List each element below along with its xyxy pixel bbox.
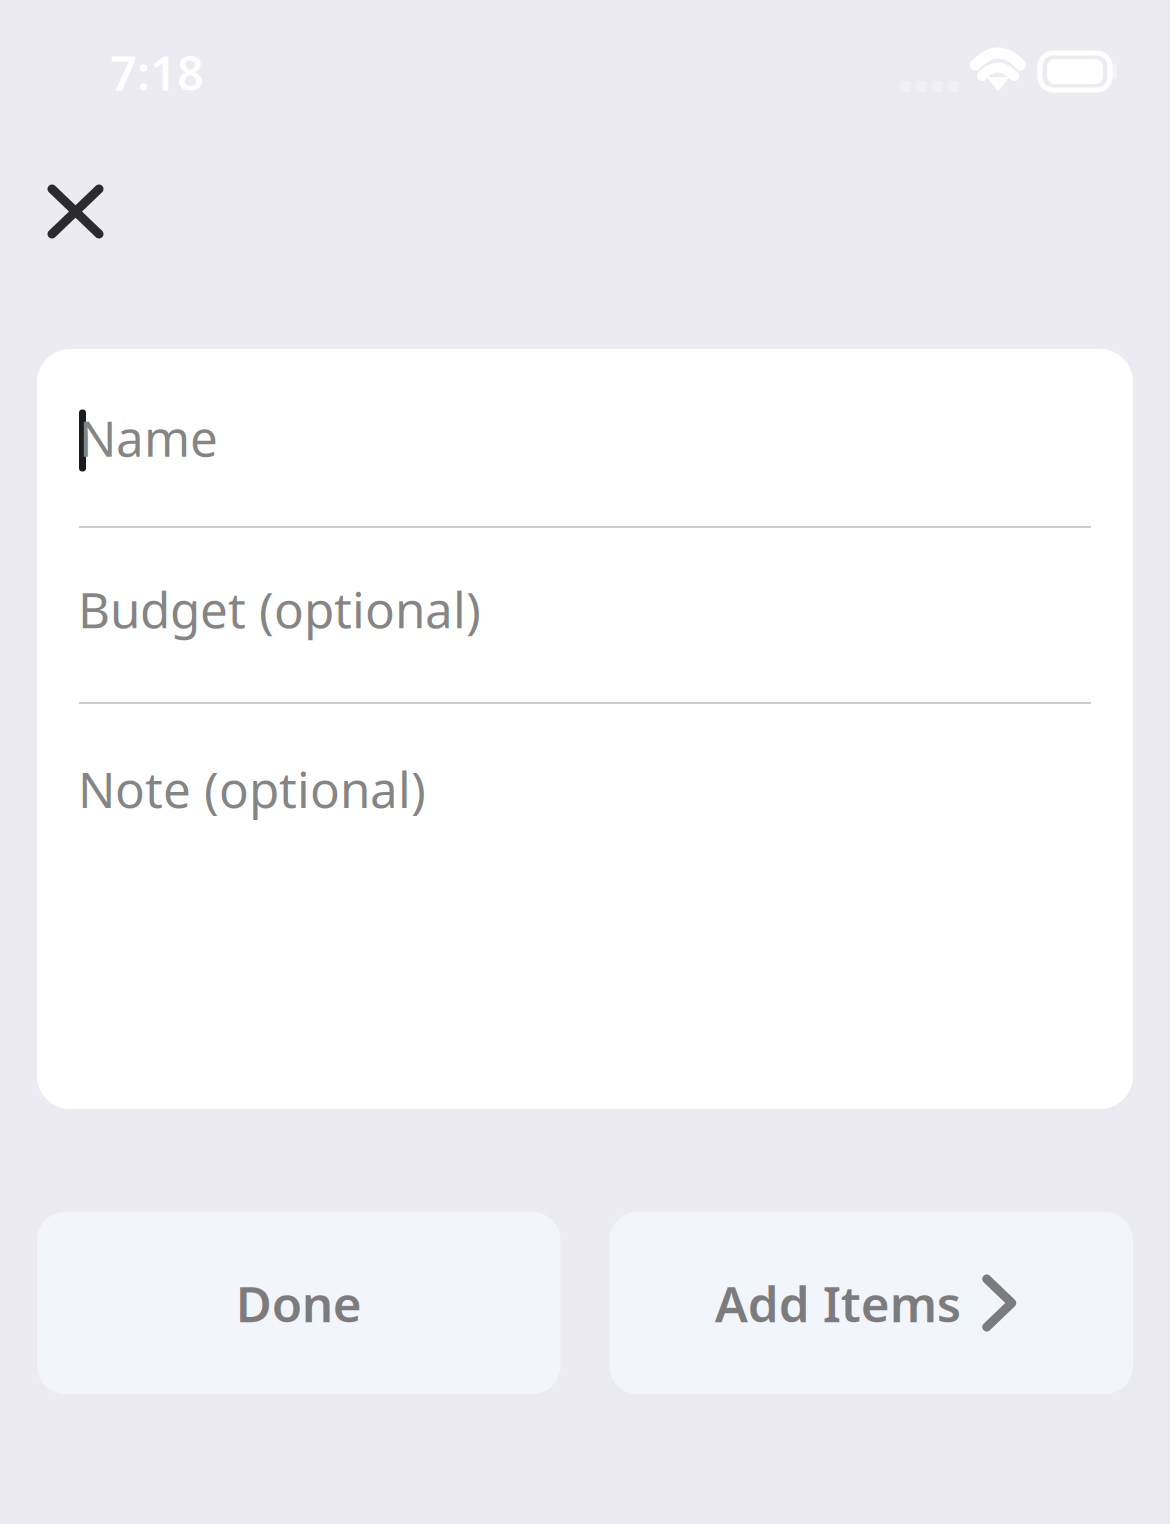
staticText: Done <box>236 1270 362 1336</box>
button[interactable]: Note (optional) <box>37 704 1133 1109</box>
button[interactable]: Close <box>22 159 129 264</box>
button[interactable]: Add Items <box>609 1212 1133 1394</box>
staticText: Add Items <box>715 1270 961 1336</box>
staticText: Name <box>79 405 218 470</box>
staticText: 7:18 <box>110 41 204 103</box>
button[interactable]: Name <box>37 349 1133 526</box>
button[interactable]: Done <box>37 1212 560 1394</box>
staticText: Budget (optional) <box>78 576 481 642</box>
staticText: Note (optional) <box>78 756 426 821</box>
button[interactable]: Budget (optional) <box>37 528 1133 702</box>
